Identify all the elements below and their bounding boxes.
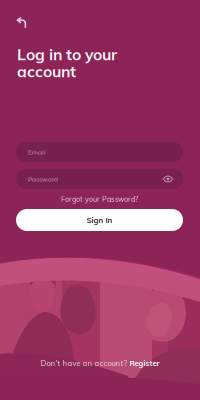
button[interactable]: Back [10, 11, 34, 35]
staticText: Forgot your Password? [61, 194, 138, 203]
staticText: Log in to your [17, 44, 117, 64]
button[interactable]: Forgot your Password? [16, 193, 183, 205]
staticText: Register [129, 358, 159, 368]
button[interactable]: Don't have an account? [0, 356, 200, 370]
button[interactable]: Sign In [16, 209, 183, 231]
staticText: Sign In [86, 215, 112, 225]
staticText: Password [28, 175, 58, 183]
staticText: Email [28, 148, 46, 156]
staticText: Don't have an account? [40, 358, 126, 368]
staticText: account [17, 61, 76, 81]
